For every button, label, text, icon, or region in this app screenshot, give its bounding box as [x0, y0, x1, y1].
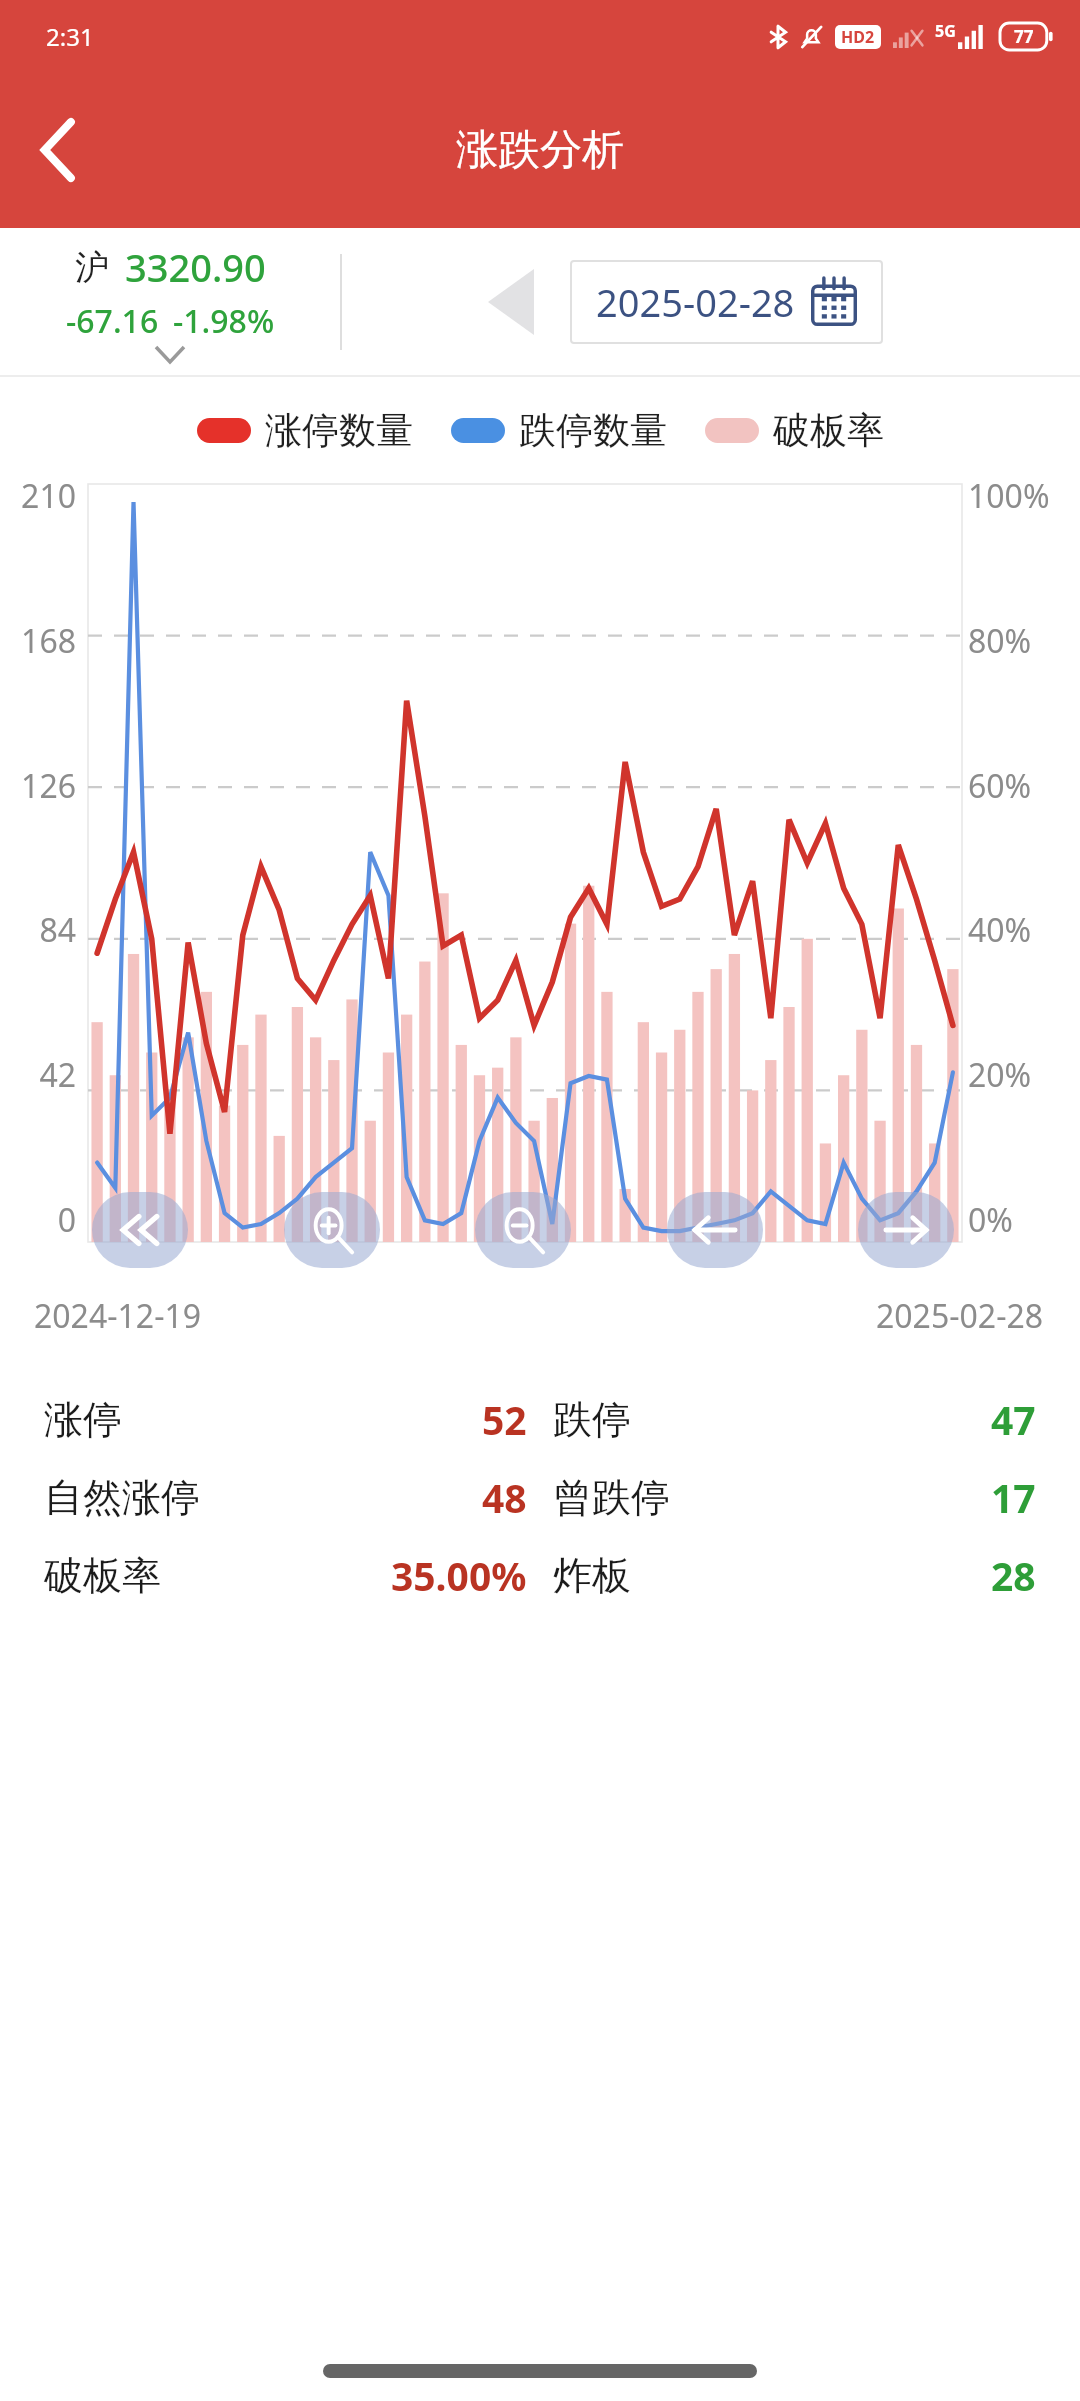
staticText: 35.00% — [391, 1549, 527, 1602]
button[interactable]: 2025-02-28 — [596, 276, 857, 328]
staticText: 沪 — [75, 246, 109, 289]
button[interactable]: Zoom in — [284, 1192, 380, 1268]
staticText: 炸板 — [553, 1551, 631, 1600]
staticText: 0 — [0, 1198, 76, 1242]
staticText: 涨跌分析 — [456, 124, 624, 177]
staticText: 跌停 — [553, 1395, 631, 1444]
staticText: 168 — [0, 619, 76, 663]
staticText: -67.16 — [66, 299, 159, 343]
staticText: 涨停数量 — [265, 407, 413, 454]
button[interactable]: 涨停 — [44, 1380, 527, 1458]
staticText: 2:31 — [46, 20, 94, 53]
staticText: 0% — [968, 1198, 1080, 1242]
staticText: 2025-02-28 — [596, 276, 795, 328]
staticText: HD2 — [841, 26, 875, 48]
staticText: 126 — [0, 764, 76, 808]
staticText: 3320.90 — [125, 241, 266, 293]
staticText: 涨停 — [44, 1395, 122, 1444]
staticText: 曾跌停 — [553, 1473, 670, 1522]
staticText: 20% — [968, 1053, 1080, 1097]
staticText: 52 — [482, 1393, 527, 1446]
button[interactable]: 炸板 — [553, 1536, 1036, 1614]
staticText: 28 — [991, 1549, 1036, 1602]
button[interactable]: Pan right — [858, 1192, 954, 1268]
button[interactable]: 自然涨停 — [44, 1458, 527, 1536]
staticText: 48 — [482, 1471, 527, 1524]
button[interactable]: 沪 — [0, 228, 340, 375]
staticText: 84 — [0, 908, 76, 952]
button[interactable]: First — [92, 1192, 188, 1268]
button[interactable]: 跌停 — [553, 1380, 1036, 1458]
staticText: 40% — [968, 908, 1080, 952]
staticText: 跌停数量 — [519, 407, 667, 454]
staticText: 破板率 — [773, 407, 884, 454]
staticText: 自然涨停 — [44, 1473, 200, 1522]
staticText: 77 — [1014, 25, 1034, 48]
staticText: 42 — [0, 1053, 76, 1097]
button[interactable]: Back — [16, 107, 102, 193]
staticText: 2024-12-19 — [34, 1294, 202, 1338]
staticText: 210 — [0, 474, 76, 518]
button[interactable]: 曾跌停 — [553, 1458, 1036, 1536]
staticText: 破板率 — [44, 1551, 161, 1600]
staticText: 60% — [968, 764, 1080, 808]
staticText: 2025-02-28 — [876, 1294, 1044, 1338]
button[interactable]: 破板率 — [44, 1536, 527, 1614]
staticText: 100% — [968, 474, 1080, 518]
staticText: 80% — [968, 619, 1080, 663]
button[interactable]: Pan left — [667, 1192, 763, 1268]
staticText: 17 — [991, 1471, 1036, 1524]
button[interactable]: Zoom out — [475, 1192, 571, 1268]
button[interactable]: 破板率 — [705, 407, 884, 454]
staticText: -1.98% — [173, 299, 275, 343]
staticText: 5G — [935, 20, 956, 42]
button[interactable]: Previous day — [470, 261, 552, 343]
staticText: 47 — [991, 1393, 1036, 1446]
button[interactable]: 涨停数量 — [197, 407, 413, 454]
button[interactable]: 跌停数量 — [451, 407, 667, 454]
